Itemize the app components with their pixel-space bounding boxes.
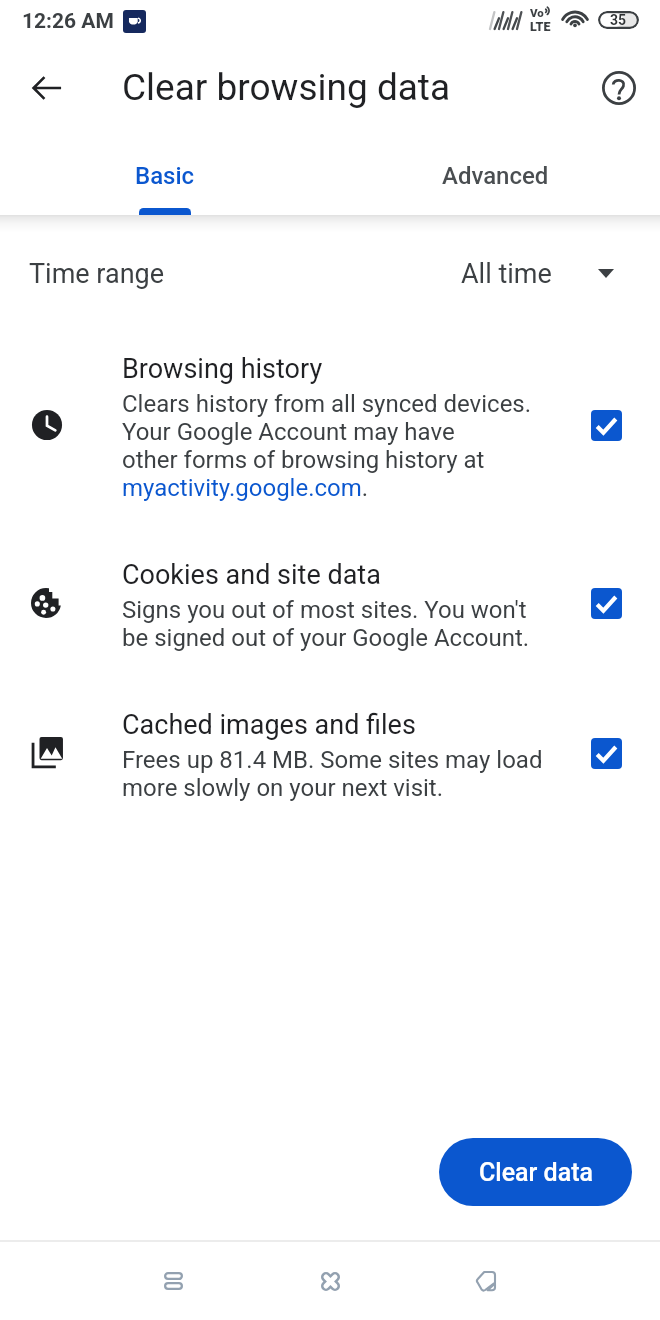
button[interactable]: Advanced bbox=[330, 125, 660, 215]
staticText: Clear data bbox=[479, 1158, 593, 1187]
staticText: myactivity.google.com. bbox=[122, 474, 369, 502]
button[interactable]: Toggle Browsing history bbox=[591, 410, 622, 441]
staticText: be signed out of your Google Account. bbox=[122, 624, 530, 652]
button[interactable]: Cached images and files bbox=[0, 709, 660, 802]
staticText: Clears history from all synced devices. bbox=[122, 390, 532, 418]
staticText: 35 bbox=[610, 12, 627, 28]
staticText: Frees up 81.4 MB. Some sites may load bbox=[122, 746, 543, 774]
staticText: more slowly on your next visit. bbox=[122, 774, 444, 802]
staticText: 12:26 AM bbox=[22, 9, 114, 34]
button[interactable]: Toggle Cached images and files bbox=[591, 738, 622, 769]
button[interactable]: Back bbox=[436, 1242, 536, 1320]
staticText: Basic bbox=[135, 162, 195, 190]
button[interactable]: Cookies and site data bbox=[0, 559, 660, 652]
button[interactable]: Back bbox=[19, 60, 75, 116]
button[interactable]: Time range bbox=[0, 232, 660, 315]
staticText: Cookies and site data bbox=[122, 559, 381, 591]
staticText: Advanced bbox=[442, 162, 549, 190]
button[interactable]: Home bbox=[280, 1242, 380, 1320]
staticText: Browsing history bbox=[122, 353, 323, 385]
staticText: LTE bbox=[530, 19, 551, 34]
staticText: Time range bbox=[29, 258, 165, 290]
staticText: Your Google Account may have bbox=[122, 418, 455, 446]
staticText: other forms of browsing history at bbox=[122, 446, 485, 474]
staticText: Clear browsing data bbox=[122, 66, 451, 109]
staticText: Signs you out of most sites. You won't bbox=[122, 596, 527, 624]
button[interactable]: Browsing history bbox=[0, 353, 660, 502]
button[interactable]: Basic bbox=[0, 125, 330, 215]
staticText: Cached images and files bbox=[122, 709, 416, 741]
button[interactable]: Help bbox=[595, 64, 643, 112]
button[interactable]: Clear data bbox=[439, 1138, 632, 1206]
staticText: Vo bbox=[530, 6, 544, 19]
button[interactable]: Toggle Cookies and site data bbox=[591, 588, 622, 619]
button[interactable]: Recent apps bbox=[123, 1242, 223, 1320]
staticText: All time bbox=[461, 258, 552, 290]
